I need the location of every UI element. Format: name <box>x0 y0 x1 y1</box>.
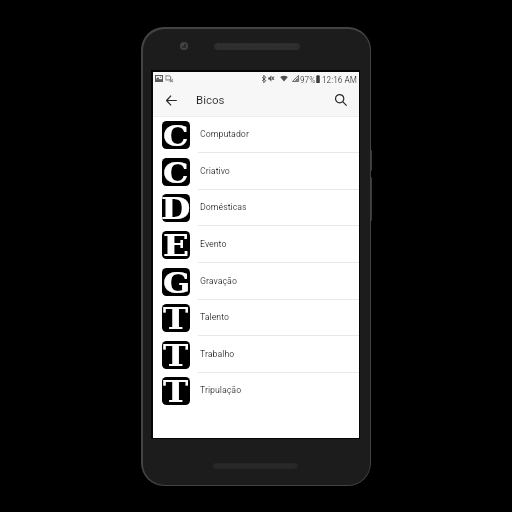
staticText: Gravação <box>200 276 237 286</box>
button[interactable]: Domésticas <box>153 190 359 226</box>
staticText: 97% <box>300 75 316 85</box>
button[interactable]: Evento <box>153 226 359 263</box>
staticText: Tripulação <box>200 385 242 395</box>
button[interactable]: Talento <box>153 300 359 336</box>
button[interactable]: Trabalho <box>153 336 359 373</box>
staticText: Bicos <box>196 93 225 106</box>
staticText: Domésticas <box>200 202 247 212</box>
staticText: Trabalho <box>200 349 235 359</box>
staticText: Talento <box>200 312 230 322</box>
staticText: Evento <box>200 239 227 249</box>
button[interactable]: Gravação <box>153 263 359 300</box>
button[interactable]: Criativo <box>153 153 359 190</box>
button[interactable]: Tripulação <box>153 373 359 409</box>
button[interactable]: Back <box>159 88 183 112</box>
button[interactable]: Search <box>329 88 353 112</box>
staticText: 12:16 AM <box>322 75 357 85</box>
button[interactable]: Computador <box>153 117 359 153</box>
staticText: Criativo <box>200 166 230 176</box>
staticText: Computador <box>200 129 249 139</box>
